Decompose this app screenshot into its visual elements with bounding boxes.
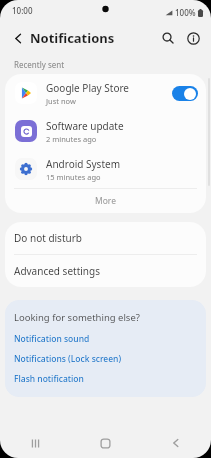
button[interactable]: Advanced settings (5, 255, 206, 287)
staticText: 2 minutes ago (46, 134, 97, 144)
button[interactable]: Notification sound (14, 333, 90, 345)
staticText: Google Play Store (46, 81, 130, 95)
staticText: 15 minutes ago (46, 172, 101, 182)
button[interactable]: Recent apps (20, 428, 50, 458)
staticText: Notifications (Lock screen) (14, 353, 122, 365)
button[interactable]: More (5, 189, 206, 213)
staticText: Recently sent (14, 59, 65, 70)
staticText: Do not disturb (14, 231, 82, 245)
button[interactable]: Do not disturb (5, 222, 206, 254)
staticText: 100% (175, 7, 196, 18)
staticText: Notifications (30, 29, 115, 47)
staticText: Just now (46, 96, 76, 106)
button[interactable]: Android System (5, 150, 206, 188)
staticText: Notification sound (14, 333, 90, 345)
staticText: Advanced settings (14, 264, 100, 278)
button[interactable]: Home (90, 428, 120, 458)
button[interactable]: Flash notification (14, 373, 84, 385)
button[interactable]: Notifications (Lock screen) (14, 353, 122, 365)
staticText: Software update (46, 119, 124, 133)
button[interactable]: Google Play Store (5, 74, 206, 112)
staticText: Looking for something else? (14, 311, 140, 324)
button[interactable]: Search (156, 26, 180, 50)
button[interactable]: Back (161, 428, 191, 458)
button[interactable]: Back (6, 26, 30, 50)
staticText: 10:00 (12, 5, 33, 16)
staticText: More (95, 195, 116, 207)
button[interactable]: Software update (5, 112, 206, 150)
staticText: Android System (46, 157, 121, 171)
button[interactable]: Information (181, 26, 205, 50)
button[interactable]: Toggle notifications (172, 86, 198, 101)
staticText: Flash notification (14, 373, 84, 385)
